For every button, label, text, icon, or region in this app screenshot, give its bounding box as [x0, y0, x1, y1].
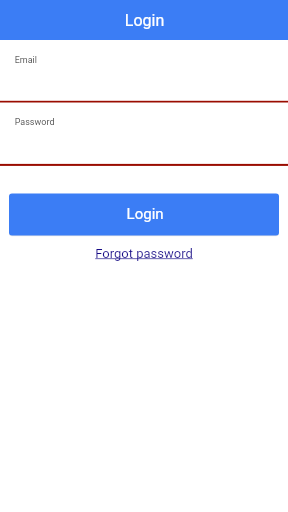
staticText: Login — [125, 11, 165, 30]
button[interactable]: Forgot password — [93, 246, 195, 261]
button[interactable]: Login — [9, 193, 279, 237]
staticText: Password — [15, 117, 55, 128]
staticText: Login — [127, 205, 164, 223]
staticText: Email — [15, 55, 38, 66]
button[interactable]: Password input field — [0, 103, 288, 165]
button[interactable]: Email input field — [0, 40, 288, 103]
